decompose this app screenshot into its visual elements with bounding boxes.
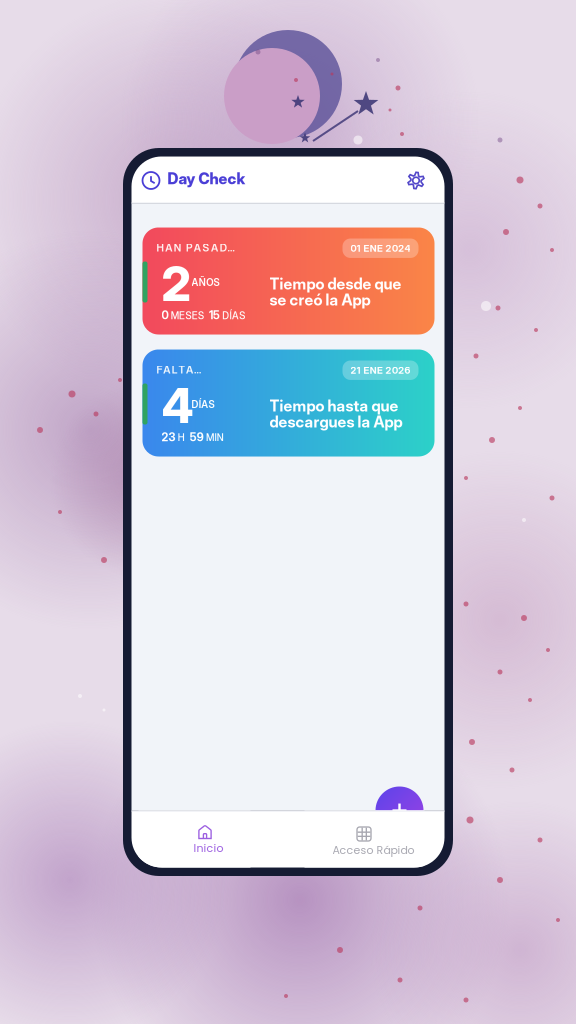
staticText: Acceso Rápido — [332, 842, 414, 858]
staticText: DÍAS — [191, 398, 214, 410]
button[interactable]: Settings — [407, 172, 424, 189]
staticText: 23 — [161, 430, 175, 444]
staticText: MIN — [204, 432, 224, 444]
staticText: FALTAN — [156, 363, 202, 376]
staticText: H — [175, 432, 185, 444]
staticText: 01 ENE 2024 — [350, 242, 410, 254]
staticText: Day Check — [167, 169, 245, 188]
staticText: 21 ENE 2026 — [350, 364, 410, 376]
staticText: DÍAS — [220, 310, 245, 322]
staticText: AÑOS — [191, 276, 219, 288]
staticText: se creó la App — [269, 290, 370, 309]
button[interactable]: Acceso Rápido — [304, 810, 424, 867]
staticText: 2 — [161, 254, 190, 313]
staticText: HAN PASADO — [156, 241, 236, 254]
staticText: Inicio — [193, 840, 223, 856]
staticText: Tiempo desde que — [269, 274, 401, 293]
staticText: 0 — [161, 308, 168, 322]
button[interactable]: HAN PASADO — [142, 227, 434, 334]
staticText: 15 — [209, 308, 220, 322]
staticText: 59 — [190, 430, 204, 444]
staticText: MESES — [168, 310, 204, 322]
button[interactable]: Inicio — [138, 810, 250, 867]
button[interactable]: Add — [375, 786, 423, 834]
staticText: Tiempo hasta que — [269, 396, 398, 415]
button[interactable]: FALTAN — [142, 349, 434, 456]
staticText: descargues la App — [269, 412, 402, 431]
staticText: 4 — [161, 376, 193, 435]
